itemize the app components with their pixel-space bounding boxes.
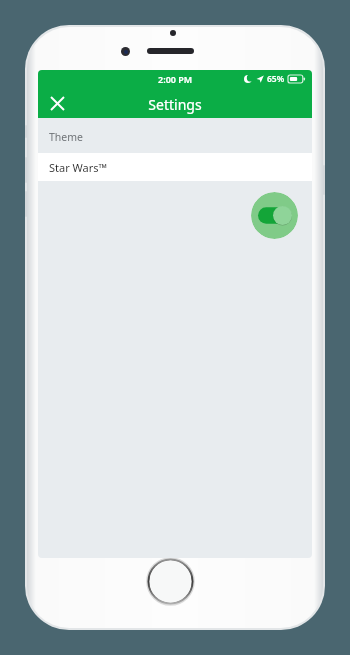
staticText: Settings	[148, 95, 202, 114]
staticText: 65%	[267, 73, 285, 85]
staticText: Theme	[49, 130, 83, 144]
button[interactable]: Close	[45, 91, 69, 115]
button[interactable]: Home	[147, 558, 194, 605]
button[interactable]: Star Wars theme toggle, on	[251, 192, 298, 239]
staticText: Star Wars™	[49, 160, 108, 175]
staticText: 2:00 PM	[158, 73, 193, 85]
button[interactable]: Star Wars™	[38, 153, 312, 181]
